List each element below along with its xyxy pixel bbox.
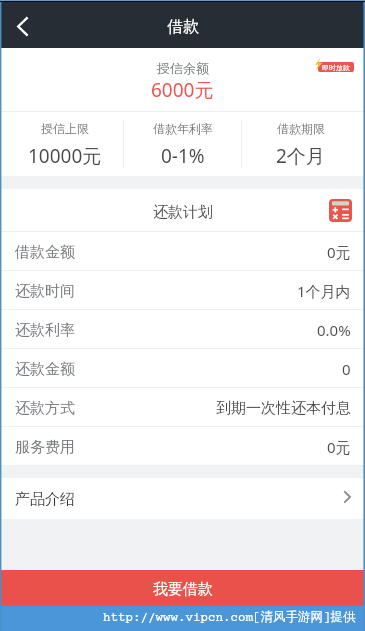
button[interactable]: 借款金额 — [0, 232, 365, 270]
button[interactable]: 还款方式 — [0, 388, 365, 426]
staticText: 还款计划 — [153, 203, 213, 222]
staticText: 还款时间 — [15, 282, 75, 301]
staticText: 还款金额 — [15, 360, 75, 379]
staticText: 0 — [342, 359, 351, 379]
staticText: 借款 — [167, 17, 199, 37]
staticText: 服务费用 — [15, 438, 75, 457]
staticText: 还款利率 — [15, 321, 75, 340]
button[interactable]: 产品介绍 — [0, 478, 365, 519]
staticText: 我要借款 — [153, 580, 213, 599]
staticText: 借款金额 — [15, 243, 75, 262]
button[interactable]: 服务费用 — [0, 427, 365, 465]
staticText: 0元 — [327, 437, 351, 457]
staticText: 0元 — [327, 242, 351, 262]
staticText: 借款年利率 — [153, 121, 213, 136]
button[interactable]: Back — [5, 7, 39, 41]
staticText: 10000元 — [28, 143, 102, 169]
staticText: 授信余额 — [157, 60, 209, 76]
staticText: 授信上限 — [41, 121, 89, 136]
staticText: 0.0% — [317, 320, 351, 340]
staticText: 0-1% — [161, 143, 205, 169]
staticText: 即时放款 — [322, 63, 350, 72]
button[interactable]: Calculator — [329, 199, 352, 222]
staticText: 到期一次性还本付息 — [216, 399, 351, 418]
staticText: 2个月 — [276, 143, 325, 169]
button[interactable]: 我要借款 — [0, 570, 365, 606]
button[interactable]: 还款时间 — [0, 271, 365, 309]
staticText: 6000元 — [151, 77, 214, 103]
button[interactable]: 还款金额 — [0, 349, 365, 387]
staticText: 1个月内 — [297, 281, 351, 301]
staticText: 还款方式 — [15, 399, 75, 418]
staticText: http://www.vipcn.com[清风手游网]提供 — [103, 609, 356, 625]
staticText: 产品介绍 — [15, 490, 75, 509]
button[interactable]: 还款利率 — [0, 310, 365, 348]
staticText: 借款期限 — [277, 121, 325, 136]
